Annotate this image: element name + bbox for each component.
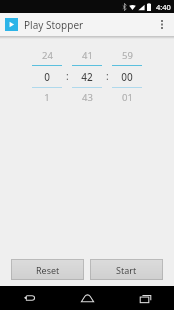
button[interactable]: 1 <box>32 88 62 107</box>
button[interactable]: 00 <box>112 66 142 87</box>
staticText: : <box>106 69 109 83</box>
staticText: 42 <box>81 70 93 84</box>
staticText: Start <box>116 264 137 276</box>
button[interactable]: 59 <box>112 45 142 65</box>
button[interactable]: Reset <box>11 259 84 280</box>
staticText: 24 <box>42 49 53 62</box>
staticText: 01 <box>122 91 133 104</box>
button[interactable]: Recents <box>116 286 174 310</box>
button[interactable]: Home <box>58 286 116 310</box>
button[interactable]: More options <box>155 13 169 36</box>
staticText: Play Stopper <box>24 18 84 32</box>
staticText: 41 <box>82 49 93 62</box>
button[interactable]: 43 <box>72 88 102 107</box>
button[interactable]: 0 <box>32 66 62 87</box>
button[interactable]: 42 <box>72 66 102 87</box>
staticText: : <box>66 69 69 83</box>
staticText: 0 <box>44 70 50 84</box>
staticText: 00 <box>121 70 133 84</box>
staticText: 43 <box>82 91 93 104</box>
staticText: 4:40 <box>156 2 171 12</box>
button[interactable]: Back <box>0 286 58 310</box>
staticText: 59 <box>122 49 133 62</box>
staticText: Reset <box>36 264 60 276</box>
button[interactable]: 41 <box>72 45 102 65</box>
staticText: 1 <box>44 91 50 104</box>
button[interactable]: 24 <box>32 45 62 65</box>
button[interactable]: 01 <box>112 88 142 107</box>
button[interactable]: Start <box>90 259 163 280</box>
